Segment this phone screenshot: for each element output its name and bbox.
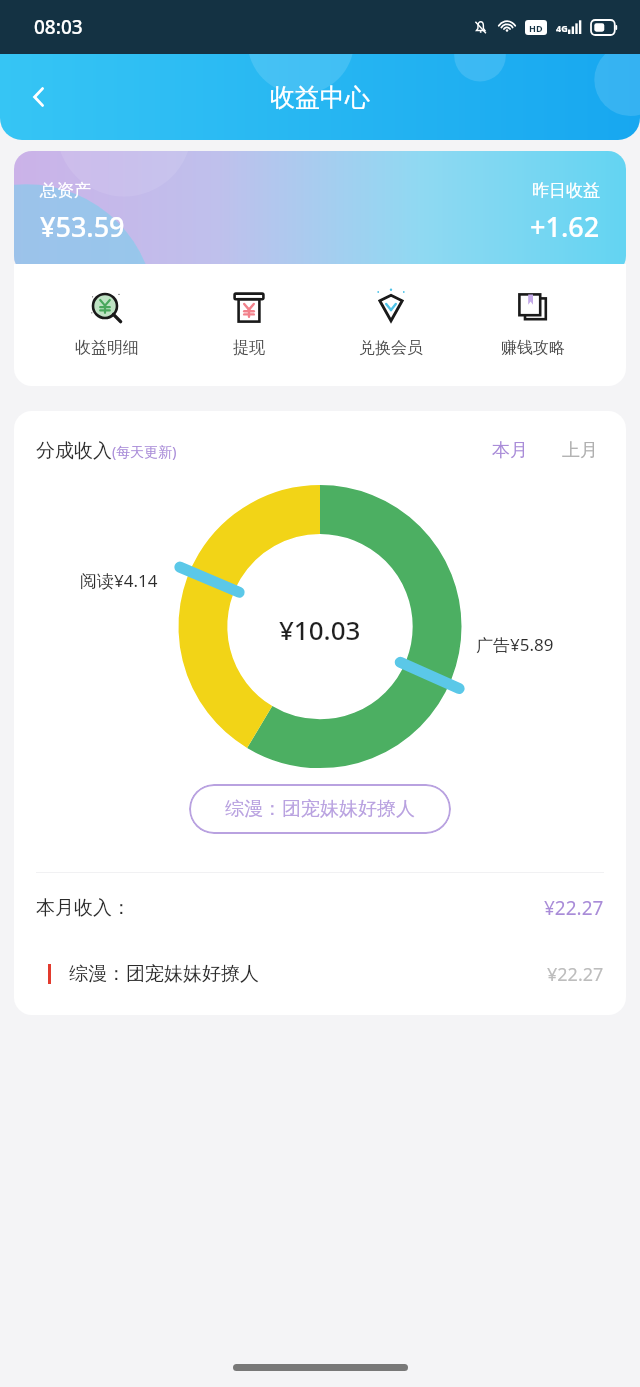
staticText: HD	[529, 22, 543, 34]
staticText: (每天更新)	[112, 442, 177, 461]
staticText: 收益明细	[75, 338, 139, 358]
staticText: 综漫：团宠妹妹好撩人	[225, 797, 415, 821]
staticText: 本月收入：	[36, 896, 131, 920]
staticText: ¥10.03	[279, 612, 361, 647]
staticText: 上月	[562, 439, 598, 462]
button[interactable]: 综漫：团宠妹妹好撩人	[189, 784, 451, 834]
button[interactable]: 提现	[194, 286, 304, 358]
button[interactable]: 兑换会员	[336, 286, 446, 358]
staticText: 收益中心	[270, 82, 370, 113]
staticText: 本月	[492, 439, 528, 462]
staticText: 综漫：团宠妹妹好撩人	[69, 962, 259, 986]
button[interactable]: Back	[14, 72, 64, 122]
staticText: 4G	[556, 22, 568, 34]
button[interactable]: 赚钱攻略	[478, 286, 588, 358]
button[interactable]: 总资产	[14, 151, 626, 274]
staticText: +1.62	[530, 208, 600, 245]
staticText: 阅读¥4.14	[80, 569, 158, 592]
staticText: 分成收入	[36, 439, 112, 463]
staticText: ¥22.27	[544, 895, 604, 921]
staticText: 昨日收益	[532, 180, 600, 201]
staticText: 08:03	[34, 14, 83, 40]
staticText: ¥22.27	[547, 962, 604, 987]
staticText: 兑换会员	[359, 338, 423, 358]
staticText: ¥53.59	[40, 208, 125, 245]
staticText: 赚钱攻略	[501, 338, 565, 358]
button[interactable]: 上月	[556, 435, 604, 466]
staticText: 提现	[233, 338, 265, 358]
button[interactable]: 收益明细	[52, 286, 162, 358]
staticText: 广告¥5.89	[476, 633, 554, 656]
button[interactable]: 综漫：团宠妹妹好撩人	[48, 943, 604, 1005]
button[interactable]: 本月	[486, 435, 534, 466]
staticText: 总资产	[40, 180, 91, 201]
